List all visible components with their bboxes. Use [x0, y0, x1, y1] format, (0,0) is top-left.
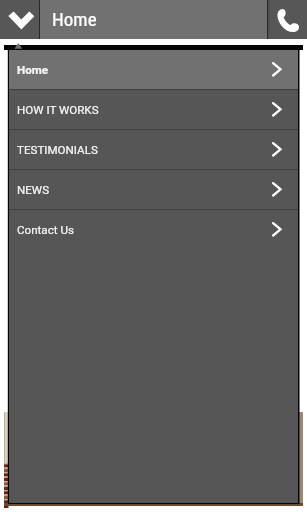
staticText: Home	[17, 63, 49, 77]
staticText: TESTIMONIALS	[17, 143, 98, 157]
staticText: Home	[52, 8, 97, 30]
staticText: NEWS	[17, 183, 50, 197]
button[interactable]: Home	[9, 50, 298, 89]
button[interactable]: HOW IT WORKS	[9, 90, 298, 129]
button[interactable]: Call us	[267, 0, 307, 39]
staticText: HOW IT WORKS	[17, 103, 99, 117]
button[interactable]: Contact Us	[9, 210, 298, 249]
button[interactable]: Open navigation menu	[0, 0, 39, 39]
button[interactable]: TESTIMONIALS	[9, 130, 298, 169]
staticText: Contact Us	[17, 223, 74, 237]
button[interactable]: NEWS	[9, 170, 298, 209]
